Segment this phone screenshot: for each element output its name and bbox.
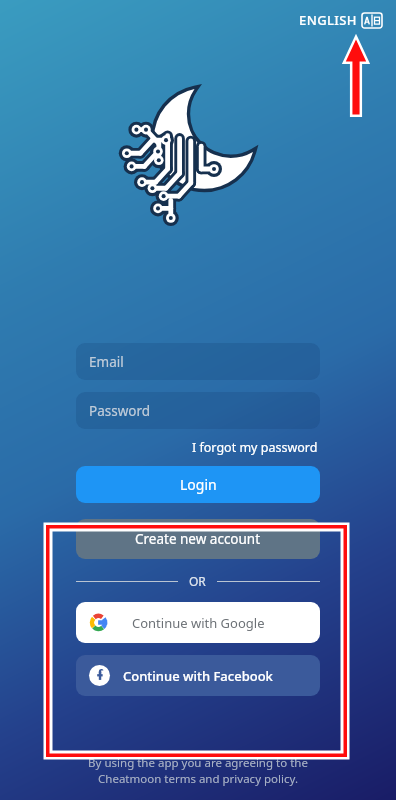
staticText: Login <box>180 475 217 494</box>
staticText: OR <box>189 573 206 589</box>
button[interactable]: Email <box>76 343 320 380</box>
staticText: By using the app you are agreeing to the… <box>48 755 348 786</box>
staticText: Continue with Facebook <box>123 667 273 685</box>
button[interactable]: Password <box>76 392 320 429</box>
button[interactable]: Login <box>76 466 320 503</box>
staticText: ENGLISH <box>299 11 357 29</box>
button[interactable]: Create new account <box>76 519 320 559</box>
staticText: Password <box>89 402 151 420</box>
staticText: I forgot my password <box>192 439 318 456</box>
staticText: Email <box>89 353 124 371</box>
staticText: Create new account <box>135 530 261 548</box>
button[interactable]: Continue with Facebook <box>76 655 320 696</box>
button[interactable]: Continue with Google <box>76 602 320 643</box>
button[interactable]: ENGLISH <box>295 8 386 32</box>
button[interactable]: I forgot my password <box>190 437 320 458</box>
other: Change language <box>362 13 382 28</box>
staticText: Continue with Google <box>132 614 265 632</box>
